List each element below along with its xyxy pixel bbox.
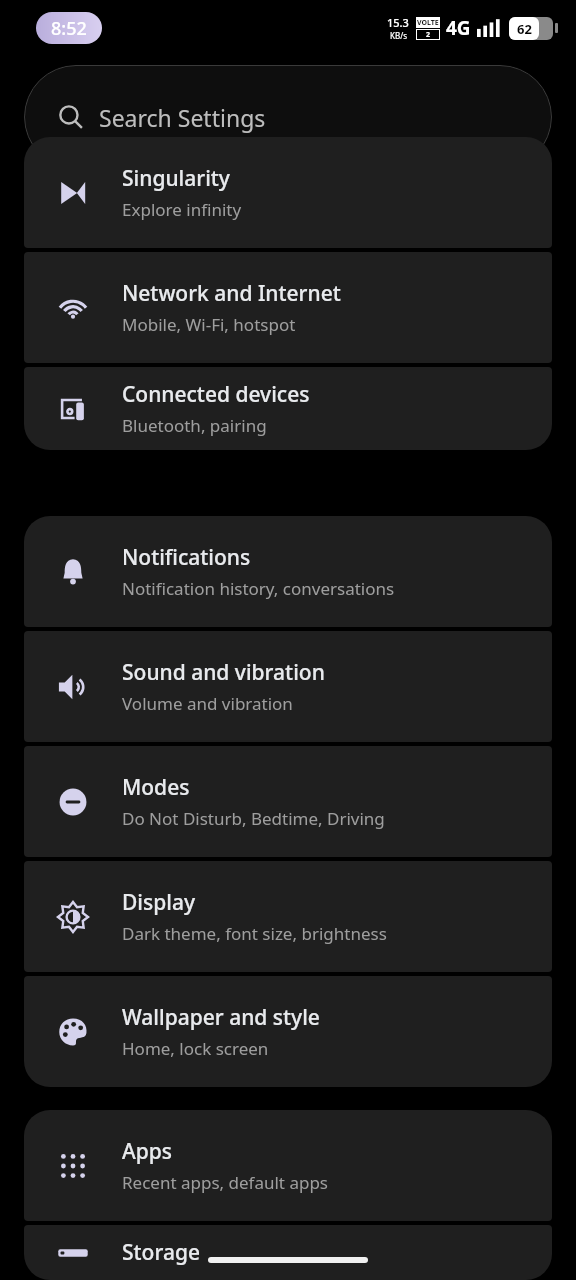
staticText: Storage xyxy=(122,1238,200,1267)
button[interactable]: Singularity xyxy=(24,137,552,248)
button[interactable]: Search Settings xyxy=(24,65,552,169)
staticText: Apps xyxy=(122,1137,173,1166)
staticText: Sound and vibration xyxy=(122,658,325,687)
staticText: Wallpaper and style xyxy=(122,1003,320,1032)
staticText: Explore infinity xyxy=(122,198,242,221)
staticText: 15.3 xyxy=(387,15,409,30)
staticText: Search Settings xyxy=(99,102,266,133)
button[interactable]: Sound and vibration xyxy=(24,631,552,742)
staticText: 8:52 xyxy=(51,16,87,41)
staticText: 62 xyxy=(517,20,532,38)
button[interactable]: Apps xyxy=(24,1110,552,1221)
staticText: Connected devices xyxy=(122,380,310,409)
staticText: Bluetooth, pairing xyxy=(122,414,267,437)
button[interactable]: Notifications xyxy=(24,516,552,627)
staticText: VOLTE xyxy=(417,18,439,28)
staticText: Network and Internet xyxy=(122,279,341,308)
staticText: Modes xyxy=(122,773,190,802)
staticText: Volume and vibration xyxy=(122,692,293,715)
staticText: Home, lock screen xyxy=(122,1037,269,1060)
staticText: Recent apps, default apps xyxy=(122,1171,329,1194)
button[interactable]: Connected devices xyxy=(24,367,552,450)
staticText: Notifications xyxy=(122,543,251,572)
staticText: 4G xyxy=(446,15,471,41)
staticText: Do Not Disturb, Bedtime, Driving xyxy=(122,807,385,830)
staticText: Dark theme, font size, brightness xyxy=(122,922,387,945)
button[interactable]: Network and Internet xyxy=(24,252,552,363)
button[interactable]: Wallpaper and style xyxy=(24,976,552,1087)
button[interactable]: Modes xyxy=(24,746,552,857)
button[interactable]: Storage xyxy=(24,1225,552,1280)
staticText: Notification history, conversations xyxy=(122,577,395,600)
staticText: Mobile, Wi-Fi, hotspot xyxy=(122,313,296,336)
staticText: 2 xyxy=(426,30,431,40)
staticText: KB/s xyxy=(390,30,407,41)
staticText: Display xyxy=(122,888,196,917)
button[interactable]: Display xyxy=(24,861,552,972)
staticText: Singularity xyxy=(122,164,230,193)
